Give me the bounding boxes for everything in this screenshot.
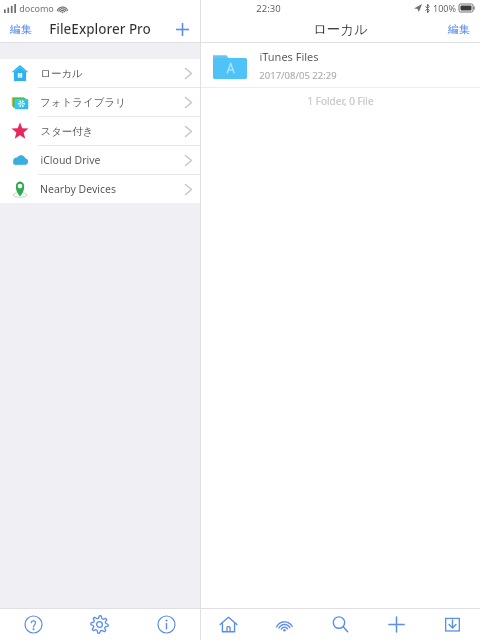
button[interactable]: iTunes Files (201, 43, 480, 87)
button[interactable]: Search (312, 609, 368, 640)
staticText: 100% (433, 2, 456, 14)
staticText: 編集 (10, 22, 32, 36)
button[interactable]: Settings (66, 609, 133, 640)
staticText: 編集 (448, 22, 470, 36)
button[interactable]: Home (201, 609, 256, 640)
button[interactable]: Help (0, 609, 66, 640)
button[interactable]: Network (256, 609, 312, 640)
staticText: iTunes Files (259, 49, 319, 64)
button[interactable]: Nearby Devices (0, 174, 200, 203)
button[interactable]: 編集 (6, 19, 36, 39)
button[interactable]: Add (368, 609, 424, 640)
staticText: Nearby Devices (40, 182, 116, 196)
staticText: スター付き (40, 125, 94, 138)
staticText: docomo (19, 2, 54, 14)
staticText: ローカル (313, 21, 368, 38)
button[interactable]: フォトライブラリ (0, 87, 200, 116)
staticText: 2017/08/05 22:29 (259, 69, 337, 82)
button[interactable]: ローカル (0, 59, 200, 87)
staticText: 1 Folder, 0 File (307, 94, 374, 108)
staticText: FileExplorer Pro (49, 20, 151, 38)
button[interactable]: iCloud Drive (0, 145, 200, 174)
button[interactable]: 編集 (444, 19, 474, 39)
button[interactable]: Download (424, 609, 480, 640)
staticText: ローカル (40, 67, 83, 80)
button[interactable]: スター付き (0, 116, 200, 145)
button[interactable]: Add (172, 19, 192, 39)
staticText: iCloud Drive (40, 153, 101, 167)
staticText: 22:30 (256, 2, 281, 15)
button[interactable]: Info (133, 609, 200, 640)
staticText: フォトライブラリ (40, 96, 126, 109)
